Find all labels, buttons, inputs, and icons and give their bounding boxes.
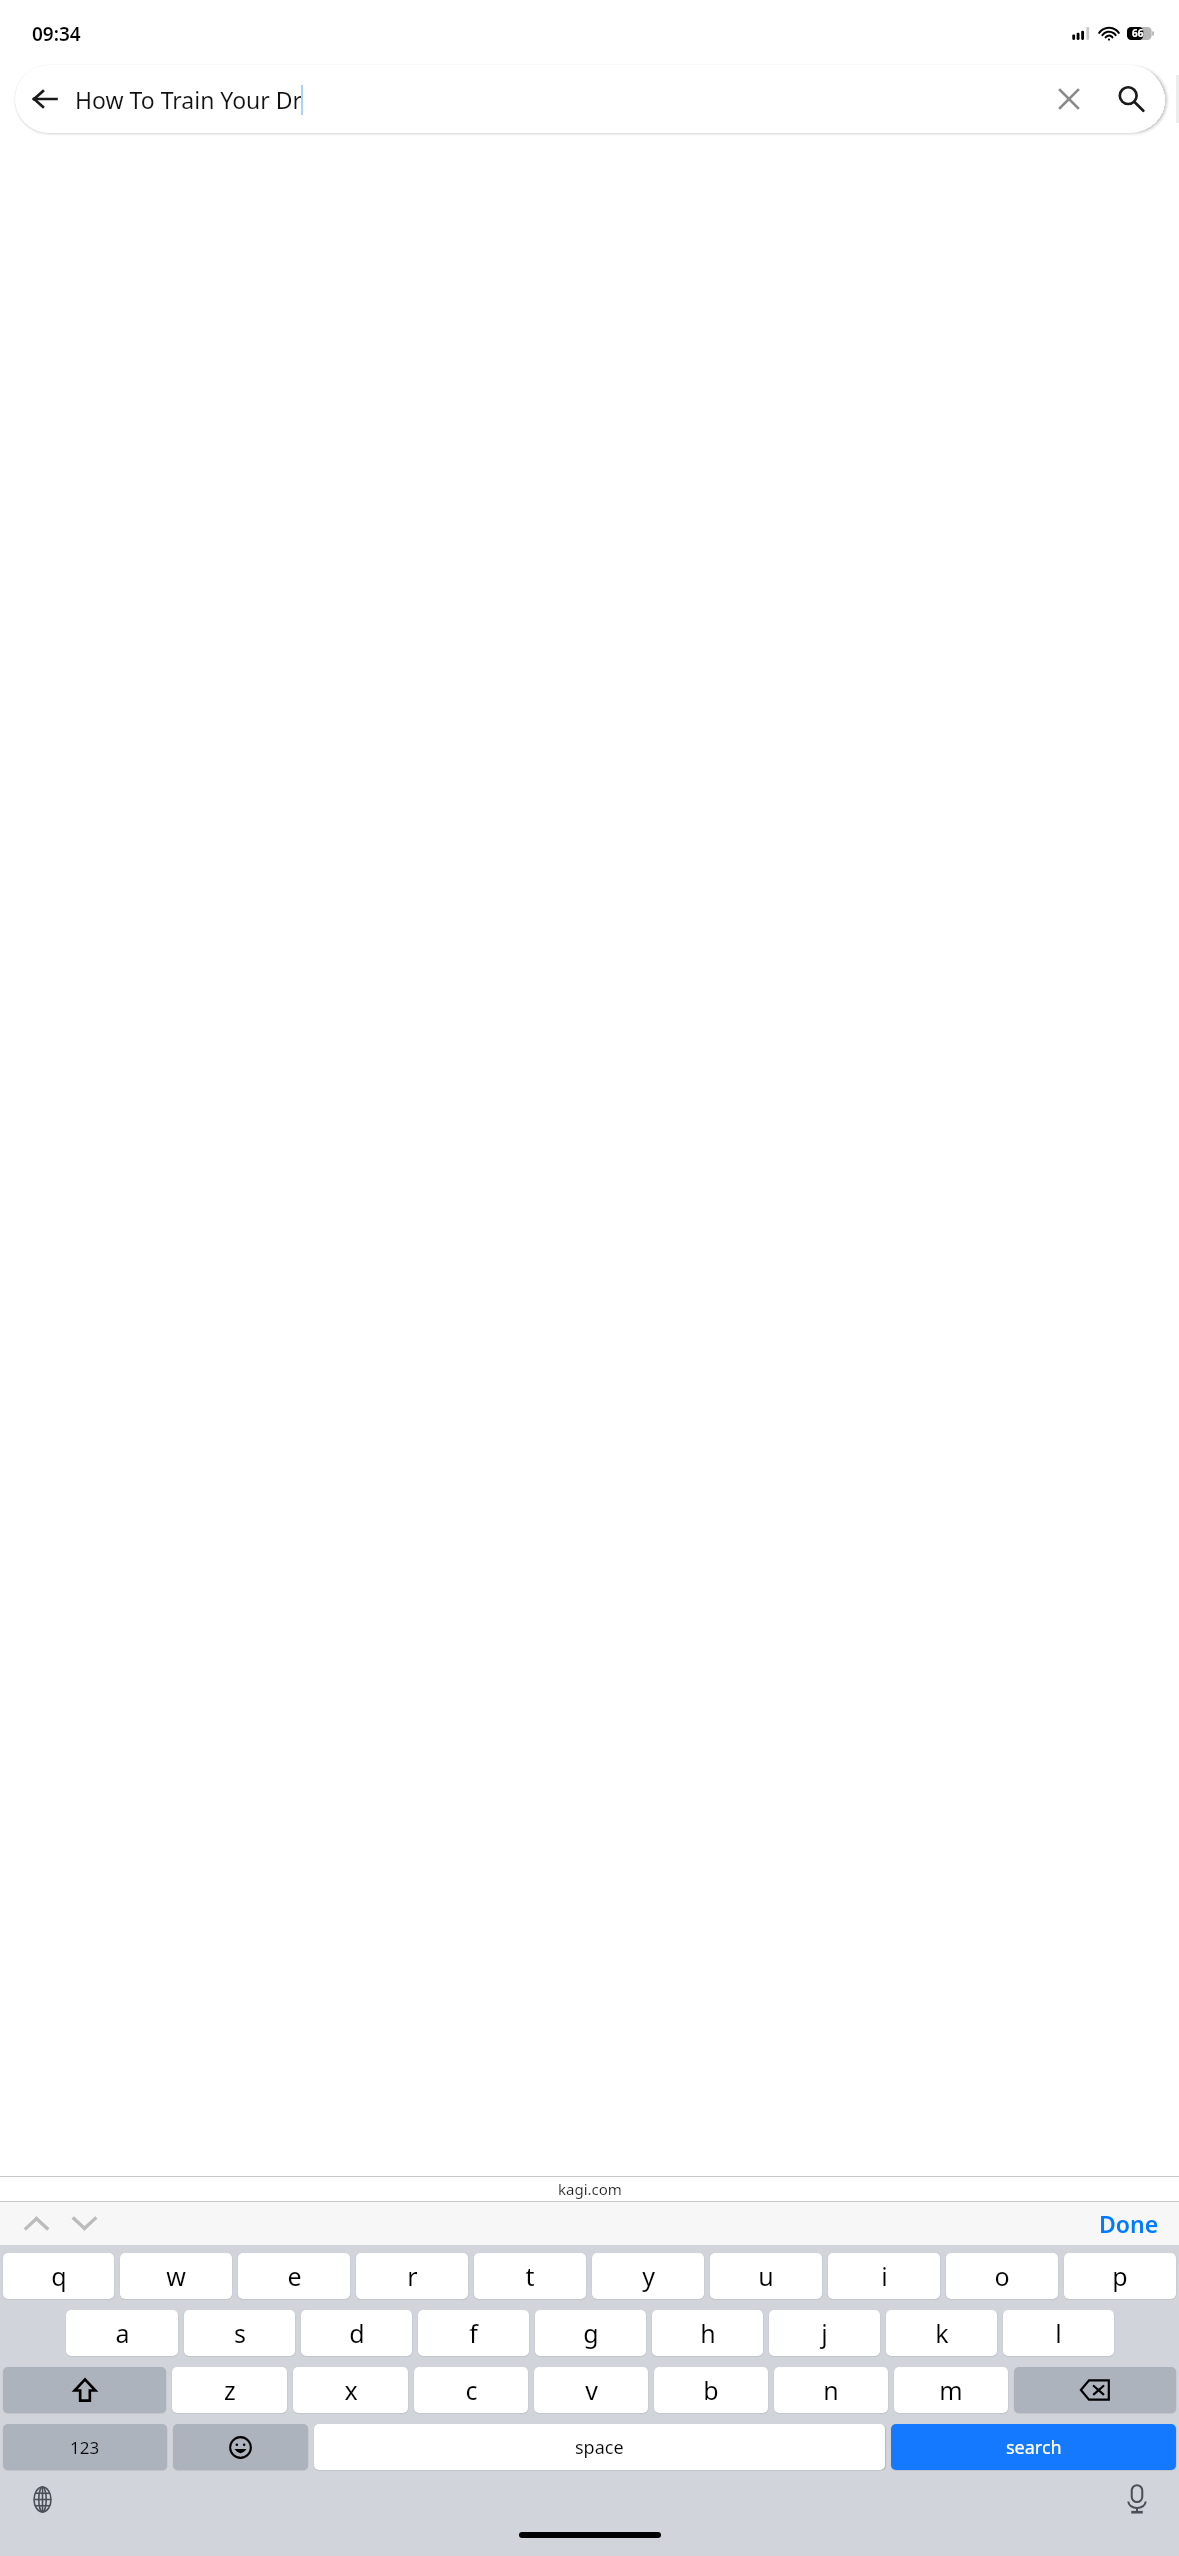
staticText: s (234, 2316, 246, 2350)
staticText: i (881, 2259, 888, 2293)
button[interactable]: Back (15, 65, 75, 133)
staticText: r (407, 2259, 418, 2293)
button[interactable]: Backspace (1014, 2367, 1176, 2413)
staticText: f (469, 2316, 478, 2350)
button[interactable]: g (535, 2310, 646, 2356)
button[interactable]: a (66, 2310, 178, 2356)
staticText: kagi.com (558, 2179, 622, 2199)
staticText: w (166, 2259, 186, 2293)
staticText: 66 (1132, 26, 1144, 40)
button[interactable]: r (356, 2253, 468, 2299)
button[interactable]: p (1064, 2253, 1176, 2299)
staticText: a (115, 2316, 130, 2350)
staticText: x (344, 2373, 358, 2407)
staticText: h (700, 2316, 716, 2350)
staticText: y (642, 2259, 655, 2293)
staticText: b (703, 2373, 719, 2407)
button[interactable]: search (891, 2424, 1176, 2470)
button[interactable]: y (592, 2253, 704, 2299)
button[interactable]: v (534, 2367, 648, 2413)
staticText: search (1006, 2435, 1062, 2460)
button[interactable]: q (3, 2253, 114, 2299)
button[interactable]: k (886, 2310, 997, 2356)
button[interactable]: m (894, 2367, 1008, 2413)
staticText: c (465, 2373, 478, 2407)
button[interactable]: u (710, 2253, 822, 2299)
button[interactable]: n (774, 2367, 888, 2413)
staticText: j (821, 2316, 828, 2350)
staticText: Done (1099, 2208, 1159, 2239)
button[interactable]: t (474, 2253, 586, 2299)
button[interactable]: Search (1098, 65, 1164, 133)
button[interactable]: Back (15, 65, 1164, 133)
staticText: e (287, 2259, 302, 2293)
button[interactable]: j (769, 2310, 880, 2356)
staticText: n (823, 2373, 839, 2407)
button[interactable]: e (238, 2253, 350, 2299)
button[interactable]: h (652, 2310, 763, 2356)
button[interactable]: l (1003, 2310, 1114, 2356)
staticText: 09:34 (32, 21, 81, 47)
staticText: space (575, 2435, 624, 2460)
button[interactable]: o (946, 2253, 1058, 2299)
staticText: o (994, 2259, 1010, 2293)
button[interactable]: Previous field (12, 2202, 60, 2245)
staticText: m (939, 2373, 963, 2407)
button[interactable]: Dictation (1113, 2475, 1161, 2523)
button[interactable]: c (414, 2367, 528, 2413)
button[interactable]: f (418, 2310, 529, 2356)
button[interactable]: Next field (60, 2202, 108, 2245)
button[interactable]: x (293, 2367, 408, 2413)
button[interactable]: Switch keyboard language (18, 2475, 66, 2523)
button[interactable]: space (314, 2424, 885, 2470)
staticText: t (525, 2259, 535, 2293)
button[interactable]: b (654, 2367, 768, 2413)
button[interactable]: Clear (1040, 65, 1098, 133)
button[interactable]: d (301, 2310, 412, 2356)
button[interactable]: w (120, 2253, 232, 2299)
button[interactable]: i (828, 2253, 940, 2299)
staticText: l (1055, 2316, 1062, 2350)
staticText: v (585, 2373, 598, 2407)
staticText: k (935, 2316, 949, 2350)
staticText: 123 (70, 2436, 100, 2459)
button[interactable]: Shift (3, 2367, 166, 2413)
button[interactable]: 123 (3, 2424, 167, 2470)
staticText: q (51, 2259, 67, 2293)
button[interactable]: s (184, 2310, 295, 2356)
staticText: d (349, 2316, 365, 2350)
staticText: g (583, 2316, 599, 2350)
button[interactable]: z (172, 2367, 287, 2413)
staticText: How To Train Your Dr (75, 84, 303, 115)
button[interactable]: Done (1089, 2202, 1169, 2245)
staticText: u (758, 2259, 774, 2293)
staticText: p (1112, 2259, 1128, 2293)
staticText: z (224, 2373, 236, 2407)
button[interactable]: Emoji (173, 2424, 308, 2470)
